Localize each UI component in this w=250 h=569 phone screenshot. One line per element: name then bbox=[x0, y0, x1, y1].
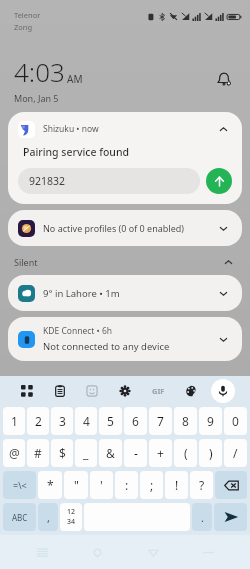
staticText: ! bbox=[175, 477, 179, 493]
button[interactable]: / bbox=[224, 439, 247, 467]
button[interactable]: Recents bbox=[29, 539, 55, 565]
button[interactable]: Settings bbox=[113, 379, 137, 403]
button[interactable]: Expand bbox=[214, 284, 232, 302]
button[interactable]: 4 bbox=[75, 407, 97, 435]
button[interactable]: ) bbox=[199, 439, 222, 467]
staticText: + bbox=[157, 445, 164, 461]
button[interactable]: ' bbox=[90, 471, 113, 499]
staticText: 12 bbox=[67, 507, 76, 517]
button[interactable]: , bbox=[38, 503, 58, 531]
button[interactable]: No active profiles (0 of 0 enabled) bbox=[8, 210, 242, 246]
button[interactable]: Numbers bbox=[60, 503, 82, 531]
staticText: _ bbox=[83, 445, 89, 461]
button[interactable]: Home bbox=[84, 539, 110, 565]
staticText: ( bbox=[184, 445, 188, 461]
button[interactable]: * bbox=[38, 471, 62, 499]
button[interactable]: $ bbox=[51, 439, 73, 467]
button[interactable]: ABC bbox=[3, 503, 36, 531]
staticText: Telenor bbox=[14, 10, 41, 20]
button[interactable]: + bbox=[149, 439, 172, 467]
button[interactable]: Apps bbox=[15, 379, 39, 403]
button[interactable]: ; bbox=[140, 471, 163, 499]
staticText: 5 bbox=[107, 413, 114, 429]
staticText: 3 bbox=[59, 413, 66, 429]
staticText: " bbox=[74, 477, 79, 493]
button[interactable]: KDE Connect • 6h bbox=[8, 317, 242, 361]
staticText: GIF bbox=[152, 386, 165, 396]
staticText: 0 bbox=[232, 413, 239, 429]
button[interactable]: Expand bbox=[214, 330, 232, 348]
staticText: * bbox=[47, 477, 54, 493]
button[interactable]: Send bbox=[206, 168, 232, 194]
button[interactable]: ( bbox=[174, 439, 197, 467]
button[interactable]: _ bbox=[75, 439, 97, 467]
button[interactable]: : bbox=[115, 471, 138, 499]
button[interactable]: 8 bbox=[174, 407, 197, 435]
staticText: 4:03 bbox=[14, 54, 65, 89]
button[interactable]: 9° in Lahore • 1m bbox=[8, 275, 242, 311]
staticText: @ bbox=[9, 445, 20, 461]
staticText: 8 bbox=[182, 413, 189, 429]
staticText: & bbox=[106, 445, 115, 461]
staticText: No active profiles (0 of 0 enabled) bbox=[43, 222, 184, 234]
staticText: . bbox=[201, 510, 204, 525]
staticText: Shizuku • now bbox=[43, 123, 99, 135]
button[interactable]: Manage notifications bbox=[212, 67, 236, 91]
button[interactable]: " bbox=[64, 471, 88, 499]
staticText: - bbox=[134, 445, 138, 461]
button[interactable]: 3 bbox=[51, 407, 73, 435]
button[interactable]: @ bbox=[3, 439, 25, 467]
button[interactable]: 1 bbox=[3, 407, 25, 435]
staticText: ; bbox=[150, 477, 154, 493]
button[interactable]: Collapse section bbox=[220, 254, 236, 270]
staticText: AM bbox=[67, 72, 83, 86]
staticText: : bbox=[125, 477, 129, 493]
button[interactable]: 2 bbox=[27, 407, 49, 435]
button[interactable]: 7 bbox=[149, 407, 172, 435]
button[interactable]: Shizuku • now bbox=[8, 112, 242, 204]
staticText: , bbox=[47, 510, 50, 525]
staticText: ' bbox=[100, 477, 103, 493]
staticText: Mon, Jan 5 bbox=[14, 92, 59, 104]
button[interactable]: Expand bbox=[214, 219, 232, 237]
staticText: # bbox=[34, 445, 42, 461]
staticText: 9 bbox=[207, 413, 214, 429]
button[interactable]: & bbox=[99, 439, 122, 467]
staticText: 9° in Lahore • 1m bbox=[43, 287, 120, 300]
staticText: 7 bbox=[157, 413, 164, 429]
button[interactable]: GIF bbox=[146, 379, 170, 403]
staticText: Zong bbox=[14, 22, 33, 32]
button[interactable]: 5 bbox=[99, 407, 122, 435]
button[interactable]: =\< bbox=[3, 471, 36, 499]
button[interactable]: . bbox=[192, 503, 212, 531]
button[interactable]: Backspace bbox=[215, 471, 247, 499]
staticText: KDE Connect • 6h bbox=[43, 325, 113, 337]
staticText: Silent bbox=[14, 256, 38, 268]
button[interactable]: ! bbox=[165, 471, 188, 499]
staticText: 2 bbox=[35, 413, 42, 429]
button[interactable]: Collapse bbox=[214, 120, 232, 138]
button[interactable]: Back bbox=[140, 539, 166, 565]
button[interactable]: - bbox=[124, 439, 147, 467]
button[interactable]: Clipboard bbox=[48, 379, 72, 403]
button[interactable]: Stickers bbox=[80, 379, 104, 403]
staticText: 1 bbox=[11, 413, 18, 429]
button[interactable]: Send bbox=[214, 503, 247, 531]
button[interactable]: Voice input bbox=[211, 379, 235, 403]
staticText: 34 bbox=[67, 517, 76, 527]
button[interactable]: 9 bbox=[199, 407, 222, 435]
staticText: ? bbox=[199, 477, 205, 493]
staticText: Not connected to any device bbox=[43, 340, 170, 353]
button[interactable]: 921832 bbox=[18, 168, 200, 194]
button[interactable]: 0 bbox=[224, 407, 247, 435]
button[interactable]: Themes bbox=[179, 379, 203, 403]
button[interactable]: 6 bbox=[124, 407, 147, 435]
staticText: 4 bbox=[83, 413, 90, 429]
button[interactable]: # bbox=[27, 439, 49, 467]
staticText: / bbox=[233, 445, 238, 461]
staticText: ) bbox=[209, 445, 213, 461]
staticText: 921832 bbox=[29, 174, 66, 188]
button[interactable]: ? bbox=[190, 471, 213, 499]
